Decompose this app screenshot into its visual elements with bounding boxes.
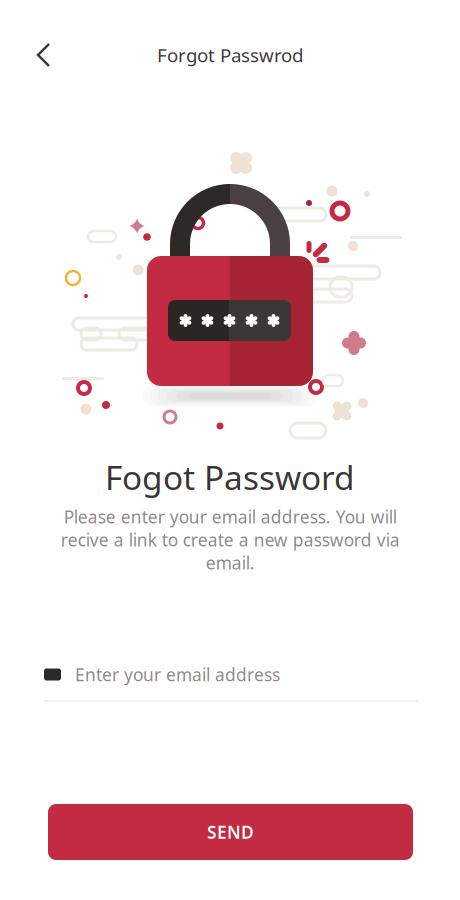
staticText: SEND (207, 820, 254, 843)
staticText: Fogot Password (105, 455, 355, 499)
button[interactable]: Back (22, 33, 66, 77)
staticText: Forgot Passwrod (157, 43, 303, 67)
button[interactable]: SEND (48, 804, 413, 860)
staticText: Enter your email address (75, 663, 280, 686)
staticText: Please enter your email address. You wil… (60, 505, 399, 574)
